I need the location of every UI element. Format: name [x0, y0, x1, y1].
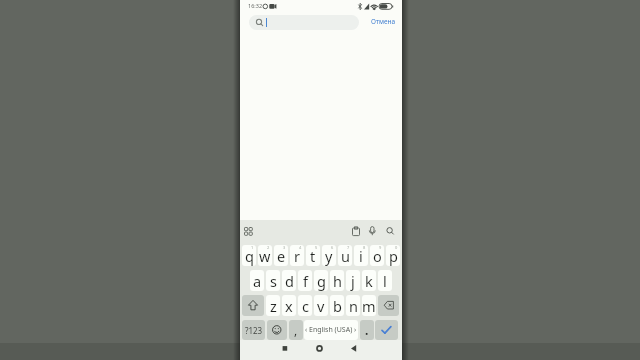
staticText: n [349, 296, 358, 316]
staticText: u [341, 246, 350, 266]
staticText: 6 [331, 245, 334, 250]
button[interactable]: . [360, 320, 374, 340]
staticText: i [359, 246, 363, 266]
button[interactable]: w [258, 245, 272, 266]
button[interactable]: p [386, 245, 400, 266]
staticText: d [285, 271, 294, 291]
button[interactable] [249, 15, 359, 30]
button[interactable]: a [250, 270, 264, 291]
staticText: s [270, 271, 277, 291]
staticText: 4 [299, 245, 302, 250]
button[interactable]: q [242, 245, 256, 266]
button[interactable]: d [282, 270, 296, 291]
button[interactable]: t [306, 245, 320, 266]
staticText: w [259, 246, 271, 266]
staticText: z [270, 296, 277, 316]
staticText: c [302, 296, 309, 316]
staticText: 2 [267, 245, 270, 250]
button[interactable] [375, 320, 398, 340]
button[interactable] [378, 295, 399, 316]
button[interactable]: x [282, 295, 296, 316]
staticText: q [245, 246, 254, 266]
button[interactable]: n [346, 295, 360, 316]
staticText: Отмена [371, 17, 396, 26]
button[interactable]: i [354, 245, 368, 266]
button[interactable]: k [362, 270, 376, 291]
button[interactable]: z [266, 295, 280, 316]
staticText: 9 [379, 245, 382, 250]
button[interactable]: g [314, 270, 328, 291]
button[interactable]: m [362, 295, 376, 316]
staticText: p [389, 246, 398, 266]
staticText: o [373, 246, 382, 266]
staticText: r [294, 246, 300, 266]
staticText: h [333, 271, 342, 291]
button[interactable]: h [330, 270, 344, 291]
staticText: 3 [283, 245, 286, 250]
staticText: 16:32 [248, 2, 263, 9]
staticText: e [277, 246, 286, 266]
staticText: j [351, 271, 355, 291]
staticText: 5 [315, 245, 318, 250]
button[interactable] [267, 320, 287, 340]
button[interactable]: c [298, 295, 312, 316]
button[interactable]: Отмена [367, 13, 399, 30]
button[interactable]: v [314, 295, 328, 316]
staticText: m [362, 296, 376, 316]
button[interactable]: e [274, 245, 288, 266]
button[interactable]: l [378, 270, 392, 291]
button[interactable]: s [266, 270, 280, 291]
staticText: g [317, 271, 326, 291]
staticText: ‹ English (USA) › [305, 325, 357, 335]
staticText: 1 [251, 245, 254, 250]
staticText: l [383, 271, 387, 291]
staticText: k [365, 271, 373, 291]
staticText: , [294, 322, 298, 338]
button[interactable]: ?123 [242, 320, 265, 340]
staticText: v [317, 296, 325, 316]
button[interactable]: y [322, 245, 336, 266]
button[interactable] [342, 340, 368, 360]
staticText: 0 [395, 245, 398, 250]
button[interactable]: o [370, 245, 384, 266]
button[interactable]: j [346, 270, 360, 291]
staticText: t [310, 246, 316, 266]
button[interactable]: f [298, 270, 312, 291]
button[interactable] [272, 340, 298, 360]
staticText: f [303, 271, 308, 291]
staticText: . [365, 322, 369, 338]
button[interactable]: b [330, 295, 344, 316]
button[interactable] [307, 340, 333, 360]
staticText: a [253, 271, 262, 291]
button[interactable]: ‹ English (USA) › [304, 320, 358, 340]
staticText: x [285, 296, 293, 316]
button[interactable] [242, 295, 264, 316]
staticText: b [333, 296, 342, 316]
staticText: y [325, 246, 333, 266]
staticText: ?123 [245, 325, 263, 336]
staticText: 7 [347, 245, 350, 250]
button[interactable]: r [290, 245, 304, 266]
button[interactable]: u [338, 245, 352, 266]
button[interactable]: , [289, 320, 303, 340]
staticText: 8 [363, 245, 366, 250]
